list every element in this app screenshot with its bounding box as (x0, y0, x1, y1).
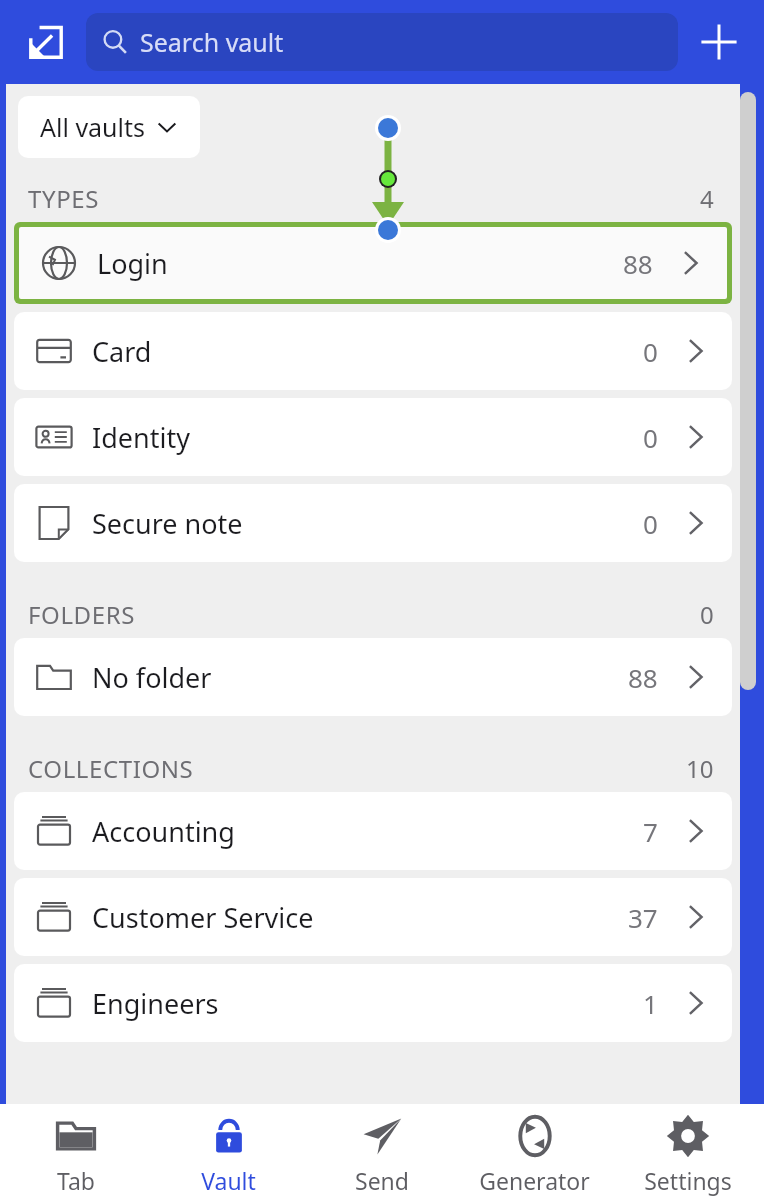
staticText: 0 (643, 334, 658, 369)
button[interactable]: Vault (152, 1104, 305, 1204)
staticText: 7 (643, 814, 658, 849)
staticText: No folder (92, 659, 212, 696)
button[interactable]: Customer Service (14, 878, 732, 956)
staticText: Send (355, 1165, 409, 1196)
staticText: Search vault (140, 25, 284, 59)
staticText: 37 (628, 900, 658, 935)
staticText: All vaults (40, 110, 146, 144)
staticText: TYPES (28, 182, 99, 215)
staticText: FOLDERS (28, 598, 135, 631)
staticText: Settings (644, 1165, 732, 1196)
staticText: Customer Service (92, 899, 314, 936)
button[interactable]: Open in new window (14, 10, 78, 74)
button[interactable]: Login (19, 227, 727, 299)
staticText: COLLECTIONS (28, 752, 194, 785)
button[interactable]: Tab (0, 1104, 152, 1204)
staticText: 10 (686, 752, 714, 785)
staticText: Generator (479, 1165, 590, 1196)
staticText: Card (92, 333, 152, 370)
button[interactable]: Search vault (86, 13, 678, 71)
button[interactable]: Engineers (14, 964, 732, 1042)
button[interactable]: All vaults (18, 96, 200, 158)
staticText: Identity (92, 419, 190, 456)
staticText: 88 (628, 660, 658, 695)
button[interactable]: Add item (688, 11, 750, 73)
button[interactable]: Card (14, 312, 732, 390)
staticText: Secure note (92, 505, 243, 542)
staticText: 0 (700, 598, 714, 631)
button[interactable]: Secure note (14, 484, 732, 562)
staticText: 1 (643, 986, 658, 1021)
button[interactable]: Settings (611, 1104, 764, 1204)
staticText: 4 (700, 182, 714, 215)
button[interactable]: Identity (14, 398, 732, 476)
button[interactable]: Accounting (14, 792, 732, 870)
button[interactable]: Generator (458, 1104, 611, 1204)
staticText: 0 (643, 420, 658, 455)
staticText: Accounting (92, 813, 235, 850)
staticText: 88 (623, 246, 653, 281)
staticText: 0 (643, 506, 658, 541)
button[interactable]: No folder (14, 638, 732, 716)
staticText: Login (97, 245, 168, 282)
staticText: Tab (57, 1165, 95, 1196)
staticText: Vault (201, 1165, 256, 1196)
button[interactable]: Send (305, 1104, 458, 1204)
staticText: Engineers (92, 985, 219, 1022)
